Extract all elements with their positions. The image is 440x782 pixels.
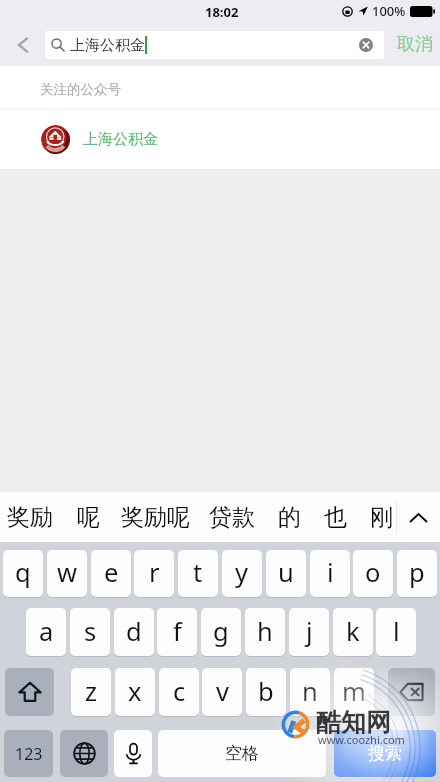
button[interactable]: j	[289, 608, 329, 656]
staticText: b	[258, 674, 274, 709]
button[interactable]: e	[91, 550, 131, 597]
staticText: 奖励	[7, 503, 53, 532]
button[interactable]: l	[376, 608, 416, 656]
button[interactable]: 奖励呢	[110, 492, 200, 542]
button[interactable]: 123	[4, 730, 53, 777]
button[interactable]: 上海公积金	[0, 110, 440, 169]
staticText: 也	[324, 503, 347, 532]
button[interactable]: v	[202, 668, 242, 716]
staticText: 100%	[372, 2, 406, 20]
staticText: d	[126, 614, 142, 649]
button[interactable]: c	[159, 668, 199, 716]
button[interactable]: 呢	[68, 492, 108, 542]
staticText: 贷款	[209, 503, 255, 532]
staticText: www.coozhi.com	[318, 732, 405, 747]
button[interactable]: 空格	[158, 730, 326, 777]
staticText: q	[15, 555, 31, 590]
button[interactable]: q	[3, 550, 43, 597]
button[interactable]: 刚	[361, 492, 401, 542]
staticText: 上海公积金	[83, 130, 158, 149]
button[interactable]: Voice input	[114, 730, 152, 777]
staticText: z	[85, 674, 97, 709]
button[interactable]: Clear text	[354, 33, 378, 57]
staticText: i	[327, 555, 334, 590]
staticText: t	[193, 555, 203, 590]
staticText: 搜索	[368, 743, 402, 764]
button[interactable]: t	[178, 550, 218, 597]
staticText: 123	[15, 743, 43, 765]
button[interactable]: k	[333, 608, 373, 656]
staticText: o	[365, 555, 381, 590]
staticText: g	[213, 614, 229, 649]
button[interactable]: h	[245, 608, 285, 656]
button[interactable]: 奖励	[0, 492, 61, 542]
button[interactable]: Switch keyboard	[60, 730, 108, 777]
staticText: u	[278, 555, 294, 590]
staticText: 取消	[397, 33, 433, 56]
staticText: c	[173, 674, 186, 709]
staticText: y	[235, 555, 249, 590]
button[interactable]: Back	[0, 23, 45, 66]
button[interactable]: b	[246, 668, 286, 716]
staticText: m	[342, 674, 366, 709]
staticText: 关注的公众号	[40, 81, 121, 98]
staticText: k	[346, 614, 360, 649]
button[interactable]: r	[134, 550, 174, 597]
staticText: l	[393, 614, 400, 649]
button[interactable]: d	[114, 608, 154, 656]
button[interactable]: 贷款	[201, 492, 263, 542]
staticText: j	[306, 614, 313, 649]
staticText: v	[216, 674, 229, 709]
button[interactable]: m	[334, 668, 374, 716]
staticText: r	[149, 555, 160, 590]
button[interactable]: 取消	[390, 23, 440, 66]
button[interactable]: i	[310, 550, 350, 597]
button[interactable]: 的	[269, 492, 309, 542]
button[interactable]: Shift	[5, 668, 54, 716]
button[interactable]: Hide candidates	[397, 492, 440, 542]
staticText: w	[57, 555, 78, 590]
button[interactable]: 也	[315, 492, 355, 542]
button[interactable]: f	[157, 608, 197, 656]
staticText: a	[39, 614, 54, 649]
button[interactable]: p	[397, 550, 437, 597]
button[interactable]: u	[266, 550, 306, 597]
button[interactable]: a	[26, 608, 66, 656]
staticText: f	[173, 614, 182, 649]
staticText: 奖励呢	[121, 503, 190, 532]
staticText: 18:02	[205, 3, 239, 21]
staticText: 空格	[225, 743, 259, 764]
staticText: n	[302, 674, 318, 709]
staticText: 酷知网	[316, 707, 391, 738]
button[interactable]: s	[70, 608, 110, 656]
button[interactable]: z	[71, 668, 111, 716]
button[interactable]: n	[290, 668, 330, 716]
staticText: p	[409, 555, 425, 590]
button[interactable]: w	[47, 550, 87, 597]
button[interactable]: o	[353, 550, 393, 597]
staticText: 刚	[370, 503, 393, 532]
staticText: 的	[278, 503, 301, 532]
staticText: e	[104, 555, 119, 590]
button[interactable]: 搜索	[334, 730, 436, 777]
button[interactable]: y	[222, 550, 262, 597]
button[interactable]: g	[201, 608, 241, 656]
staticText: s	[84, 614, 97, 649]
staticText: 呢	[77, 503, 100, 532]
button[interactable]: x	[115, 668, 155, 716]
staticText: x	[128, 674, 142, 709]
staticText: h	[257, 614, 273, 649]
button[interactable]: Backspace	[388, 668, 435, 716]
button[interactable]: 上海公积金	[45, 31, 384, 59]
staticText: 上海公积金	[70, 36, 145, 55]
